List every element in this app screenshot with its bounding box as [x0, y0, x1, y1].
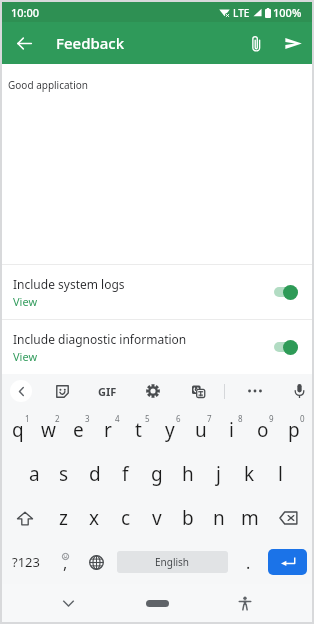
button[interactable]: d: [79, 452, 110, 496]
button[interactable]: x: [79, 496, 110, 540]
button[interactable]: w: [33, 408, 63, 452]
button[interactable]: Attach file: [240, 27, 272, 59]
staticText: b: [182, 505, 194, 531]
staticText: 10:00: [11, 5, 40, 20]
staticText: 1: [25, 413, 30, 424]
button[interactable]: z: [48, 496, 79, 540]
staticText: w: [41, 417, 56, 443]
staticText: .: [246, 552, 251, 574]
staticText: 9: [269, 413, 274, 424]
button[interactable]: Change language: [81, 540, 111, 584]
staticText: t: [135, 417, 142, 443]
staticText: r: [104, 417, 112, 443]
button[interactable]: t: [123, 408, 154, 452]
button[interactable]: More options: [244, 380, 266, 402]
button[interactable]: k: [234, 452, 265, 496]
button[interactable]: English: [117, 551, 228, 573]
staticText: Include system logs: [13, 276, 125, 292]
button[interactable]: j: [203, 452, 234, 496]
staticText: n: [213, 505, 225, 531]
staticText: View: [13, 294, 38, 309]
button[interactable]: Back: [8, 27, 40, 59]
button[interactable]: b: [172, 496, 203, 540]
staticText: ,: [63, 552, 68, 574]
staticText: 5: [145, 413, 150, 424]
button[interactable]: o: [247, 408, 278, 452]
staticText: LTE: [233, 6, 250, 20]
button[interactable]: Emoji: [51, 380, 73, 402]
button[interactable]: v: [141, 496, 172, 540]
staticText: 6: [176, 413, 181, 424]
staticText: s: [59, 461, 69, 487]
staticText: d: [89, 461, 101, 487]
button[interactable]: ?123: [2, 540, 49, 584]
button[interactable]: f: [110, 452, 141, 496]
button[interactable]: c: [110, 496, 141, 540]
button[interactable]: g: [141, 452, 172, 496]
button[interactable]: l: [265, 452, 296, 496]
staticText: 4: [115, 413, 120, 424]
button[interactable]: Shift: [2, 496, 48, 540]
button[interactable]: s: [49, 452, 79, 496]
button[interactable]: Include system logs: [2, 265, 312, 319]
button[interactable]: Accessibility: [234, 592, 256, 614]
button[interactable]: ,: [49, 540, 81, 584]
staticText: 3: [85, 413, 90, 424]
staticText: Feedback: [56, 33, 125, 53]
button[interactable]: r: [93, 408, 123, 452]
button[interactable]: Home: [138, 592, 176, 614]
staticText: v: [152, 505, 162, 531]
button[interactable]: a: [19, 452, 49, 496]
button[interactable]: e: [63, 408, 93, 452]
button[interactable]: GIF: [98, 384, 117, 399]
staticText: h: [182, 461, 194, 487]
staticText: Include diagnostic information: [13, 331, 187, 347]
staticText: f: [122, 461, 129, 487]
staticText: u: [195, 417, 207, 443]
button[interactable]: Hide keyboard: [57, 592, 79, 614]
button[interactable]: i: [216, 408, 247, 452]
staticText: English: [155, 555, 190, 569]
staticText: 0: [300, 413, 305, 424]
staticText: i: [229, 417, 234, 443]
staticText: 100%: [273, 5, 302, 20]
button[interactable]: Send: [277, 27, 309, 59]
button[interactable]: .: [234, 540, 263, 584]
button[interactable]: h: [172, 452, 203, 496]
button[interactable]: Translate: [187, 380, 209, 402]
staticText: a: [29, 461, 40, 487]
button[interactable]: y: [154, 408, 185, 452]
button[interactable]: q: [3, 408, 33, 452]
staticText: 7: [207, 413, 212, 424]
staticText: c: [121, 505, 131, 531]
button[interactable]: Close toolbar: [10, 380, 32, 402]
staticText: q: [12, 417, 24, 443]
staticText: m: [241, 505, 259, 531]
staticText: 2: [55, 413, 60, 424]
staticText: e: [73, 417, 84, 443]
button[interactable]: Backspace: [265, 496, 312, 540]
staticText: l: [278, 461, 283, 487]
staticText: ?123: [12, 553, 40, 571]
button[interactable]: m: [234, 496, 265, 540]
button[interactable]: Include diagnostic information: [2, 320, 312, 374]
staticText: o: [257, 417, 269, 443]
button[interactable]: u: [185, 408, 216, 452]
staticText: Good application: [8, 78, 89, 92]
staticText: k: [244, 461, 255, 487]
button[interactable]: Voice input: [288, 380, 310, 402]
staticText: y: [165, 417, 175, 443]
button[interactable]: Settings: [142, 380, 164, 402]
staticText: j: [216, 461, 221, 487]
staticText: p: [288, 417, 300, 443]
staticText: 8: [238, 413, 243, 424]
button[interactable]: Enter: [268, 549, 307, 575]
staticText: z: [59, 505, 68, 531]
button[interactable]: p: [278, 408, 309, 452]
button[interactable]: n: [203, 496, 234, 540]
staticText: g: [151, 461, 163, 487]
staticText: x: [89, 505, 100, 531]
staticText: View: [13, 349, 38, 364]
